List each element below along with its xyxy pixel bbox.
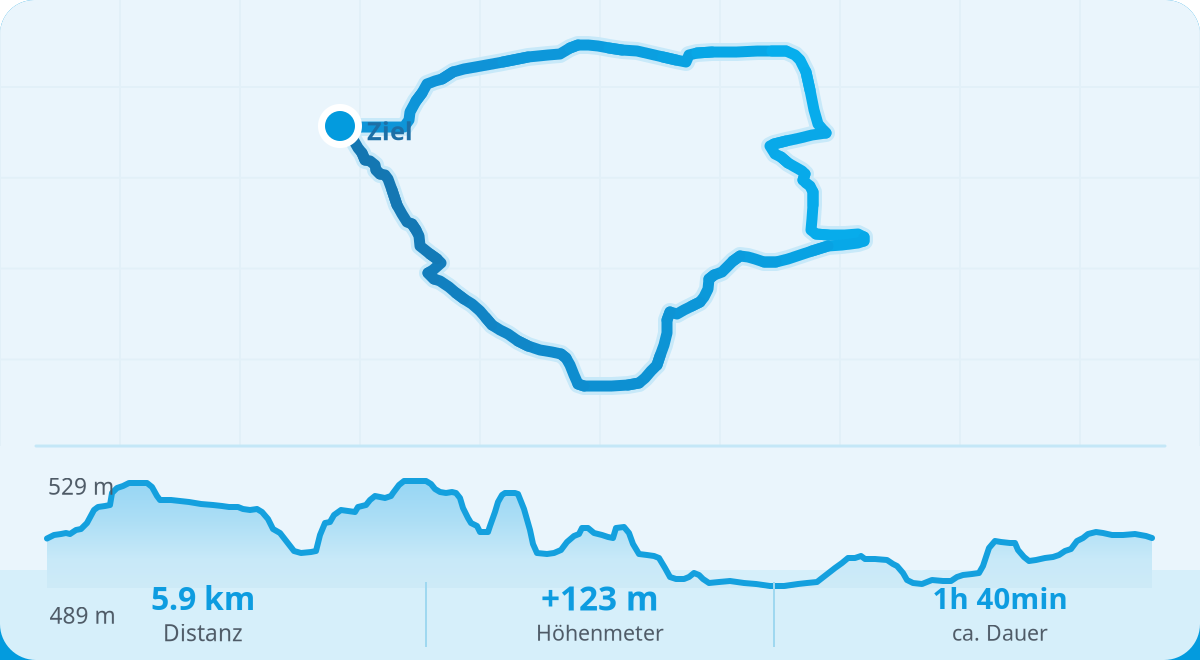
staticText: Höhenmeter (536, 618, 664, 647)
button[interactable]: 1h 40min (830, 568, 1170, 658)
staticText: 489 m (49, 600, 115, 630)
staticText: Distanz (163, 617, 243, 647)
staticText: 529 m (48, 471, 114, 501)
staticText: +123 m (541, 575, 659, 620)
staticText: ca. Dauer (952, 618, 1048, 647)
staticText: 5.9 km (151, 576, 255, 619)
button[interactable]: +123 m (430, 568, 770, 658)
button[interactable]: 5.9 km (33, 568, 373, 658)
staticText: Ziel (367, 114, 413, 147)
staticText: 1h 40min (932, 578, 1067, 617)
